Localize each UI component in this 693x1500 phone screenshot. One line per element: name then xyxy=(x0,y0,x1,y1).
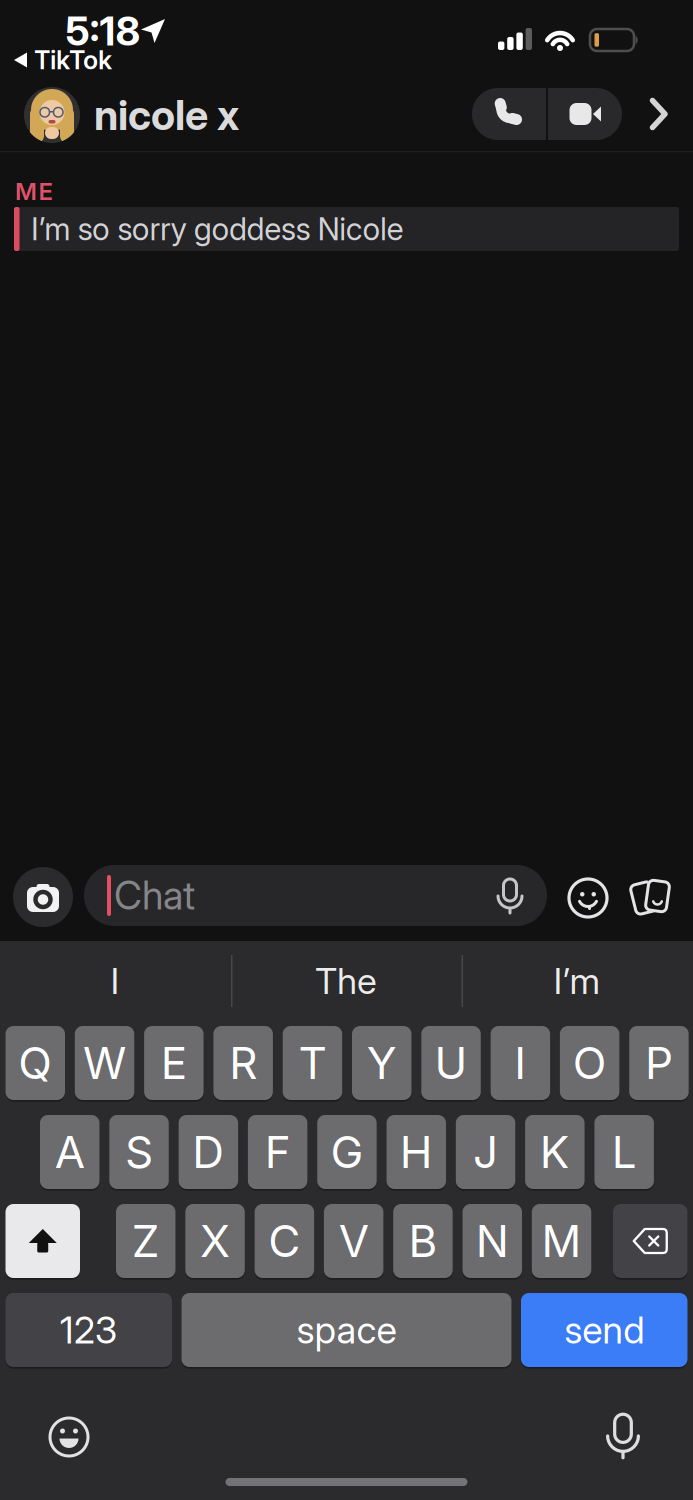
button[interactable]: Conversation details xyxy=(644,97,674,131)
staticText: I xyxy=(110,960,119,1002)
button[interactable]: K xyxy=(525,1115,585,1191)
button[interactable]: Shift xyxy=(5,1204,80,1280)
button[interactable]: Q xyxy=(5,1026,65,1102)
staticText: U xyxy=(434,1037,467,1089)
staticText: The xyxy=(315,960,377,1002)
button[interactable]: P xyxy=(629,1026,689,1102)
staticText: nicole x xyxy=(94,91,239,139)
button[interactable]: The xyxy=(236,951,456,1011)
button[interactable]: M xyxy=(532,1204,591,1280)
staticText: ME xyxy=(15,177,52,205)
button[interactable]: I xyxy=(5,951,225,1011)
button[interactable]: Back to TikTok xyxy=(14,48,112,72)
button[interactable]: T xyxy=(283,1026,342,1102)
button[interactable]: space xyxy=(181,1293,511,1369)
staticText: V xyxy=(339,1215,369,1267)
staticText: G xyxy=(330,1126,363,1178)
button[interactable]: E xyxy=(144,1026,204,1102)
staticText: O xyxy=(573,1037,607,1089)
staticText: E xyxy=(161,1037,187,1089)
staticText: 5:18 xyxy=(65,7,140,55)
staticText: space xyxy=(296,1308,396,1352)
staticText: J xyxy=(473,1126,498,1178)
button[interactable]: U xyxy=(421,1026,481,1102)
staticText: TikTok xyxy=(34,45,112,75)
button[interactable]: S xyxy=(109,1115,169,1191)
button[interactable]: Chat text field xyxy=(84,865,547,926)
button[interactable]: X xyxy=(185,1204,245,1280)
button[interactable]: D xyxy=(179,1115,238,1191)
staticText: F xyxy=(265,1126,291,1178)
staticText: L xyxy=(612,1126,637,1178)
button[interactable]: I xyxy=(491,1026,550,1102)
staticText: A xyxy=(55,1126,85,1178)
button[interactable]: Emoji xyxy=(47,1415,91,1459)
button[interactable]: I’m xyxy=(467,951,687,1011)
button[interactable]: L xyxy=(594,1115,654,1191)
staticText: I’m so sorry goddess Nicole xyxy=(31,211,404,247)
staticText: M xyxy=(541,1215,581,1267)
button[interactable]: H xyxy=(386,1115,446,1191)
button[interactable]: G xyxy=(317,1115,377,1191)
staticText: T xyxy=(298,1037,326,1089)
button[interactable]: C xyxy=(255,1204,314,1280)
staticText: C xyxy=(268,1215,300,1267)
staticText: D xyxy=(192,1126,224,1178)
staticText: Y xyxy=(367,1037,397,1089)
staticText: I’m xyxy=(553,960,600,1002)
staticText: S xyxy=(125,1126,153,1178)
staticText: B xyxy=(408,1215,437,1267)
button[interactable]: O xyxy=(560,1026,619,1102)
staticText: X xyxy=(200,1215,230,1267)
button[interactable]: Y xyxy=(352,1026,411,1102)
button[interactable]: N xyxy=(462,1204,522,1280)
staticText: 123 xyxy=(60,1308,118,1352)
button[interactable]: send xyxy=(521,1293,687,1369)
button[interactable]: Stickers xyxy=(566,876,610,920)
button[interactable]: Memories xyxy=(630,876,676,920)
button[interactable]: F xyxy=(248,1115,307,1191)
staticText: Chat xyxy=(114,873,195,918)
button[interactable]: 123 xyxy=(5,1293,172,1369)
staticText: send xyxy=(564,1308,644,1352)
staticText: N xyxy=(476,1215,509,1267)
button[interactable]: nicole x profile xyxy=(24,87,239,143)
button[interactable]: Delete xyxy=(613,1204,687,1280)
button[interactable]: R xyxy=(213,1026,273,1102)
button[interactable]: Video call xyxy=(548,88,622,140)
button[interactable]: Dictation xyxy=(601,1412,645,1460)
staticText: P xyxy=(645,1037,673,1089)
button[interactable]: A xyxy=(40,1115,99,1191)
staticText: K xyxy=(540,1126,570,1178)
button[interactable]: V xyxy=(324,1204,383,1280)
button[interactable]: Z xyxy=(116,1204,175,1280)
button[interactable]: Camera xyxy=(13,867,73,927)
button[interactable]: Voice note xyxy=(488,871,532,921)
staticText: R xyxy=(229,1037,257,1089)
button[interactable]: Voice call xyxy=(472,88,546,140)
staticText: I xyxy=(514,1037,526,1089)
button[interactable]: B xyxy=(393,1204,453,1280)
staticText: Z xyxy=(132,1215,160,1267)
staticText: W xyxy=(83,1037,126,1089)
button[interactable]: J xyxy=(456,1115,515,1191)
staticText: Q xyxy=(18,1037,52,1089)
button[interactable]: W xyxy=(75,1026,134,1102)
staticText: H xyxy=(400,1126,433,1178)
